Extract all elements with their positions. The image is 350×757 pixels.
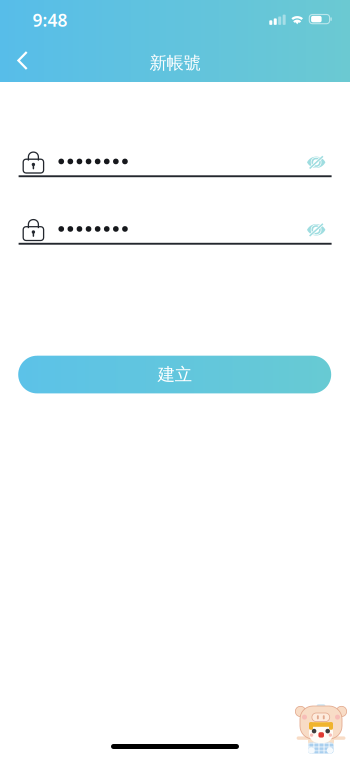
button[interactable]: Show password (300, 216, 333, 243)
staticText: 建立 (158, 364, 192, 385)
staticText: 9:48 (32, 8, 67, 31)
button[interactable]: 建立 (18, 356, 331, 393)
button[interactable]: Show password (300, 149, 333, 176)
staticText: 新帳號 (149, 52, 200, 74)
button[interactable]: Back (0, 44, 44, 76)
